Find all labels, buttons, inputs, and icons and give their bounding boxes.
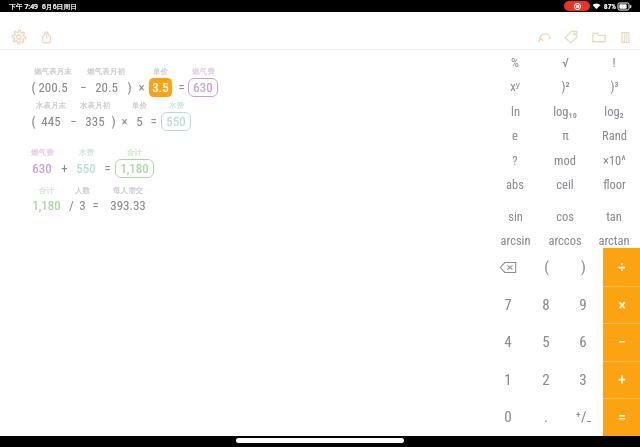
- button[interactable]: Rand: [590, 123, 638, 147]
- button[interactable]: +: [24, 157, 104, 179]
- button[interactable]: Folder: [587, 25, 611, 49]
- button[interactable]: 5: [99, 110, 179, 132]
- button[interactable]: 550: [46, 157, 126, 179]
- button[interactable]: =: [67, 157, 147, 179]
- button[interactable]: Undo: [533, 25, 557, 49]
- button[interactable]: 9: [564, 286, 602, 324]
- button[interactable]: 6: [564, 323, 602, 361]
- button[interactable]: floor: [590, 172, 638, 196]
- button[interactable]: ÷: [603, 248, 640, 286]
- staticText: /: [69, 198, 74, 213]
- button[interactable]: ): [564, 248, 602, 286]
- button[interactable]: Delete: [489, 248, 527, 286]
- button[interactable]: ×10^: [590, 148, 638, 172]
- button[interactable]: +: [603, 361, 640, 399]
- staticText: 2: [542, 371, 550, 389]
- button[interactable]: =: [55, 194, 135, 216]
- staticText: 合计: [127, 148, 142, 157]
- button[interactable]: 7: [489, 286, 527, 324]
- button[interactable]: =: [141, 76, 221, 98]
- button[interactable]: )²: [541, 74, 589, 98]
- staticText: )²: [561, 79, 570, 94]
- button[interactable]: sin: [491, 204, 539, 228]
- button[interactable]: −: [603, 323, 640, 361]
- staticText: 1,180: [120, 161, 149, 176]
- staticText: xʸ: [510, 78, 520, 95]
- button[interactable]: !: [590, 50, 638, 74]
- staticText: )³: [610, 79, 619, 94]
- button[interactable]: −: [33, 110, 113, 132]
- button[interactable]: 445: [11, 110, 91, 132]
- button[interactable]: xʸ: [491, 74, 539, 98]
- button[interactable]: 630: [163, 76, 243, 98]
- button[interactable]: ): [89, 76, 169, 98]
- staticText: 550: [166, 114, 186, 129]
- button[interactable]: ×: [84, 110, 164, 132]
- staticText: ×: [138, 80, 145, 95]
- button[interactable]: log₂: [590, 99, 638, 123]
- staticText: 单价: [153, 67, 168, 76]
- button[interactable]: 1: [489, 361, 527, 399]
- button[interactable]: (: [527, 248, 565, 286]
- button[interactable]: cos: [541, 204, 589, 228]
- button[interactable]: 5: [527, 323, 565, 361]
- button[interactable]: arccos: [541, 228, 589, 252]
- staticText: 合计: [39, 186, 54, 195]
- button[interactable]: ): [73, 110, 153, 132]
- button[interactable]: 20.5: [66, 76, 146, 98]
- staticText: 5: [542, 333, 550, 351]
- staticText: ×10^: [603, 153, 626, 168]
- button[interactable]: 3: [564, 361, 602, 399]
- staticText: 5: [136, 114, 143, 129]
- button[interactable]: (: [0, 76, 73, 98]
- button[interactable]: ×: [603, 286, 640, 324]
- button[interactable]: arctan: [590, 228, 638, 252]
- button[interactable]: 3: [42, 194, 122, 216]
- staticText: =: [104, 161, 111, 176]
- button[interactable]: (: [0, 110, 73, 132]
- staticText: 4: [504, 333, 512, 351]
- button[interactable]: e: [491, 123, 539, 147]
- staticText: 393.33: [110, 198, 146, 213]
- button[interactable]: Share: [34, 25, 58, 49]
- button[interactable]: =: [603, 398, 640, 436]
- button[interactable]: Text style: [613, 25, 637, 49]
- button[interactable]: arcsin: [491, 228, 539, 252]
- button[interactable]: ×: [101, 76, 181, 98]
- staticText: (: [31, 114, 36, 129]
- button[interactable]: 1,180: [6, 194, 86, 216]
- button[interactable]: 3.5: [120, 76, 200, 98]
- button[interactable]: 393.33: [88, 194, 168, 216]
- button[interactable]: 335: [55, 110, 135, 132]
- button[interactable]: Settings: [7, 25, 31, 49]
- button[interactable]: abs: [491, 172, 539, 196]
- button[interactable]: 0: [489, 398, 527, 436]
- button[interactable]: 550: [136, 110, 216, 132]
- button[interactable]: π: [541, 123, 589, 147]
- button[interactable]: Tag: [559, 25, 583, 49]
- button[interactable]: mod: [541, 148, 589, 172]
- button[interactable]: ⁺/₋: [564, 398, 602, 436]
- button[interactable]: 1,180: [94, 157, 174, 179]
- staticText: =: [618, 408, 626, 426]
- button[interactable]: 200.5: [13, 76, 93, 98]
- button[interactable]: log₁₀: [541, 99, 589, 123]
- staticText: 水表月初: [80, 101, 110, 110]
- button[interactable]: −: [43, 76, 123, 98]
- button[interactable]: )³: [590, 74, 638, 98]
- staticText: =: [92, 198, 99, 213]
- staticText: log₁₀: [553, 104, 577, 119]
- button[interactable]: =: [113, 110, 193, 132]
- button[interactable]: tan: [590, 204, 638, 228]
- button[interactable]: ceil: [541, 172, 589, 196]
- button[interactable]: ln: [491, 99, 539, 123]
- button[interactable]: 2: [527, 361, 565, 399]
- button[interactable]: ?: [491, 148, 539, 172]
- button[interactable]: .: [527, 398, 565, 436]
- button[interactable]: 4: [489, 323, 527, 361]
- button[interactable]: 630: [2, 157, 82, 179]
- button[interactable]: √: [541, 50, 589, 74]
- button[interactable]: %: [491, 50, 539, 74]
- button[interactable]: /: [31, 194, 111, 216]
- button[interactable]: 8: [527, 286, 565, 324]
